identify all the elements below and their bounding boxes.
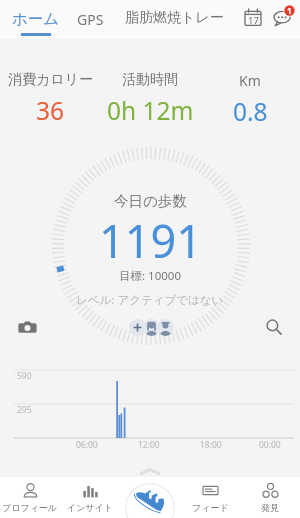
staticText: GPS <box>77 10 104 29</box>
staticText: 1191 <box>99 210 202 271</box>
staticText: 脂肪燃焼トレー <box>125 9 224 27</box>
button[interactable]: インサイト <box>60 477 120 518</box>
staticText: 0.8 <box>233 95 268 127</box>
staticText: 目標: 10000 <box>119 268 181 284</box>
staticText: 06:00 <box>76 439 98 451</box>
button[interactable]: フィード <box>180 477 240 518</box>
button[interactable]: Km <box>200 71 300 127</box>
staticText: インサイト <box>67 502 114 513</box>
button[interactable]: Calendar <box>238 0 268 30</box>
button[interactable]: ホーム <box>9 0 63 39</box>
button[interactable]: プロフィール <box>0 477 60 518</box>
button[interactable]: Friend <box>143 319 160 336</box>
staticText: 1 <box>287 5 292 16</box>
staticText: フィード <box>192 502 229 513</box>
button[interactable]: Track activity <box>125 483 175 518</box>
staticText: 295 <box>17 404 32 416</box>
staticText: 36 <box>36 94 65 127</box>
button[interactable]: Friend <box>157 319 174 336</box>
staticText: 18:00 <box>200 439 222 451</box>
staticText: 00:00 <box>259 439 281 451</box>
button[interactable]: 発見 <box>240 477 300 518</box>
staticText: 発見 <box>261 502 279 513</box>
button[interactable]: 活動時間 <box>100 71 200 127</box>
button[interactable]: 脂肪燃焼トレー <box>122 0 227 39</box>
staticText: 活動時間 <box>122 71 178 89</box>
button[interactable]: Search <box>260 313 288 341</box>
staticText: ホーム <box>12 9 60 29</box>
staticText: レベル: アクティブではない <box>76 292 224 308</box>
staticText: Km <box>239 71 261 90</box>
staticText: 消費カロリー <box>8 71 93 89</box>
staticText: プロフィール <box>2 502 58 513</box>
staticText: 0h 12m <box>107 94 194 127</box>
staticText: 今日の歩数 <box>114 192 187 210</box>
staticText: 590 <box>17 370 32 382</box>
staticText: 17 <box>248 14 259 27</box>
button[interactable]: Messages <box>268 0 298 30</box>
button[interactable]: GPS <box>74 0 107 39</box>
button[interactable]: Add friend <box>129 319 146 336</box>
staticText: 12:00 <box>138 439 160 451</box>
button[interactable]: Camera <box>13 313 41 341</box>
button[interactable]: 消費カロリー <box>0 71 100 127</box>
